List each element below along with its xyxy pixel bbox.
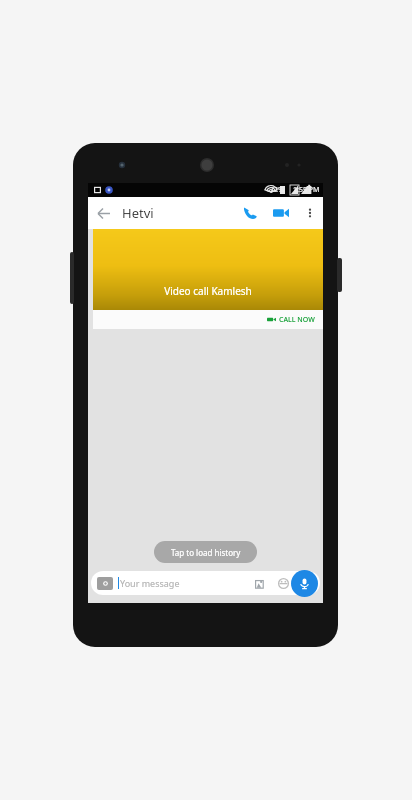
button[interactable]: Voice message bbox=[291, 570, 318, 597]
button[interactable]: Camera bbox=[97, 577, 113, 590]
staticText: CALL NOW bbox=[279, 315, 315, 325]
button[interactable]: More options bbox=[297, 200, 323, 226]
staticText: Your message bbox=[120, 577, 180, 589]
button[interactable]: Video call bbox=[265, 197, 297, 229]
staticText: Hetvi bbox=[122, 204, 154, 222]
button[interactable]: CALL NOW bbox=[93, 310, 323, 329]
button[interactable]: Tap to load history bbox=[154, 541, 257, 563]
staticText: Tap to load history bbox=[171, 547, 241, 558]
button[interactable]: Voice call bbox=[235, 198, 265, 228]
staticText: 1:55 PM bbox=[293, 185, 320, 195]
button[interactable]: Attach image bbox=[253, 576, 267, 590]
button[interactable]: Camera bbox=[91, 571, 320, 595]
staticText: 72% bbox=[270, 185, 284, 195]
button[interactable]: Emoji bbox=[276, 576, 290, 590]
button[interactable]: Video call Kamlesh bbox=[93, 229, 323, 329]
staticText: Video call Kamlesh bbox=[164, 284, 252, 298]
button[interactable]: Back bbox=[88, 198, 118, 228]
